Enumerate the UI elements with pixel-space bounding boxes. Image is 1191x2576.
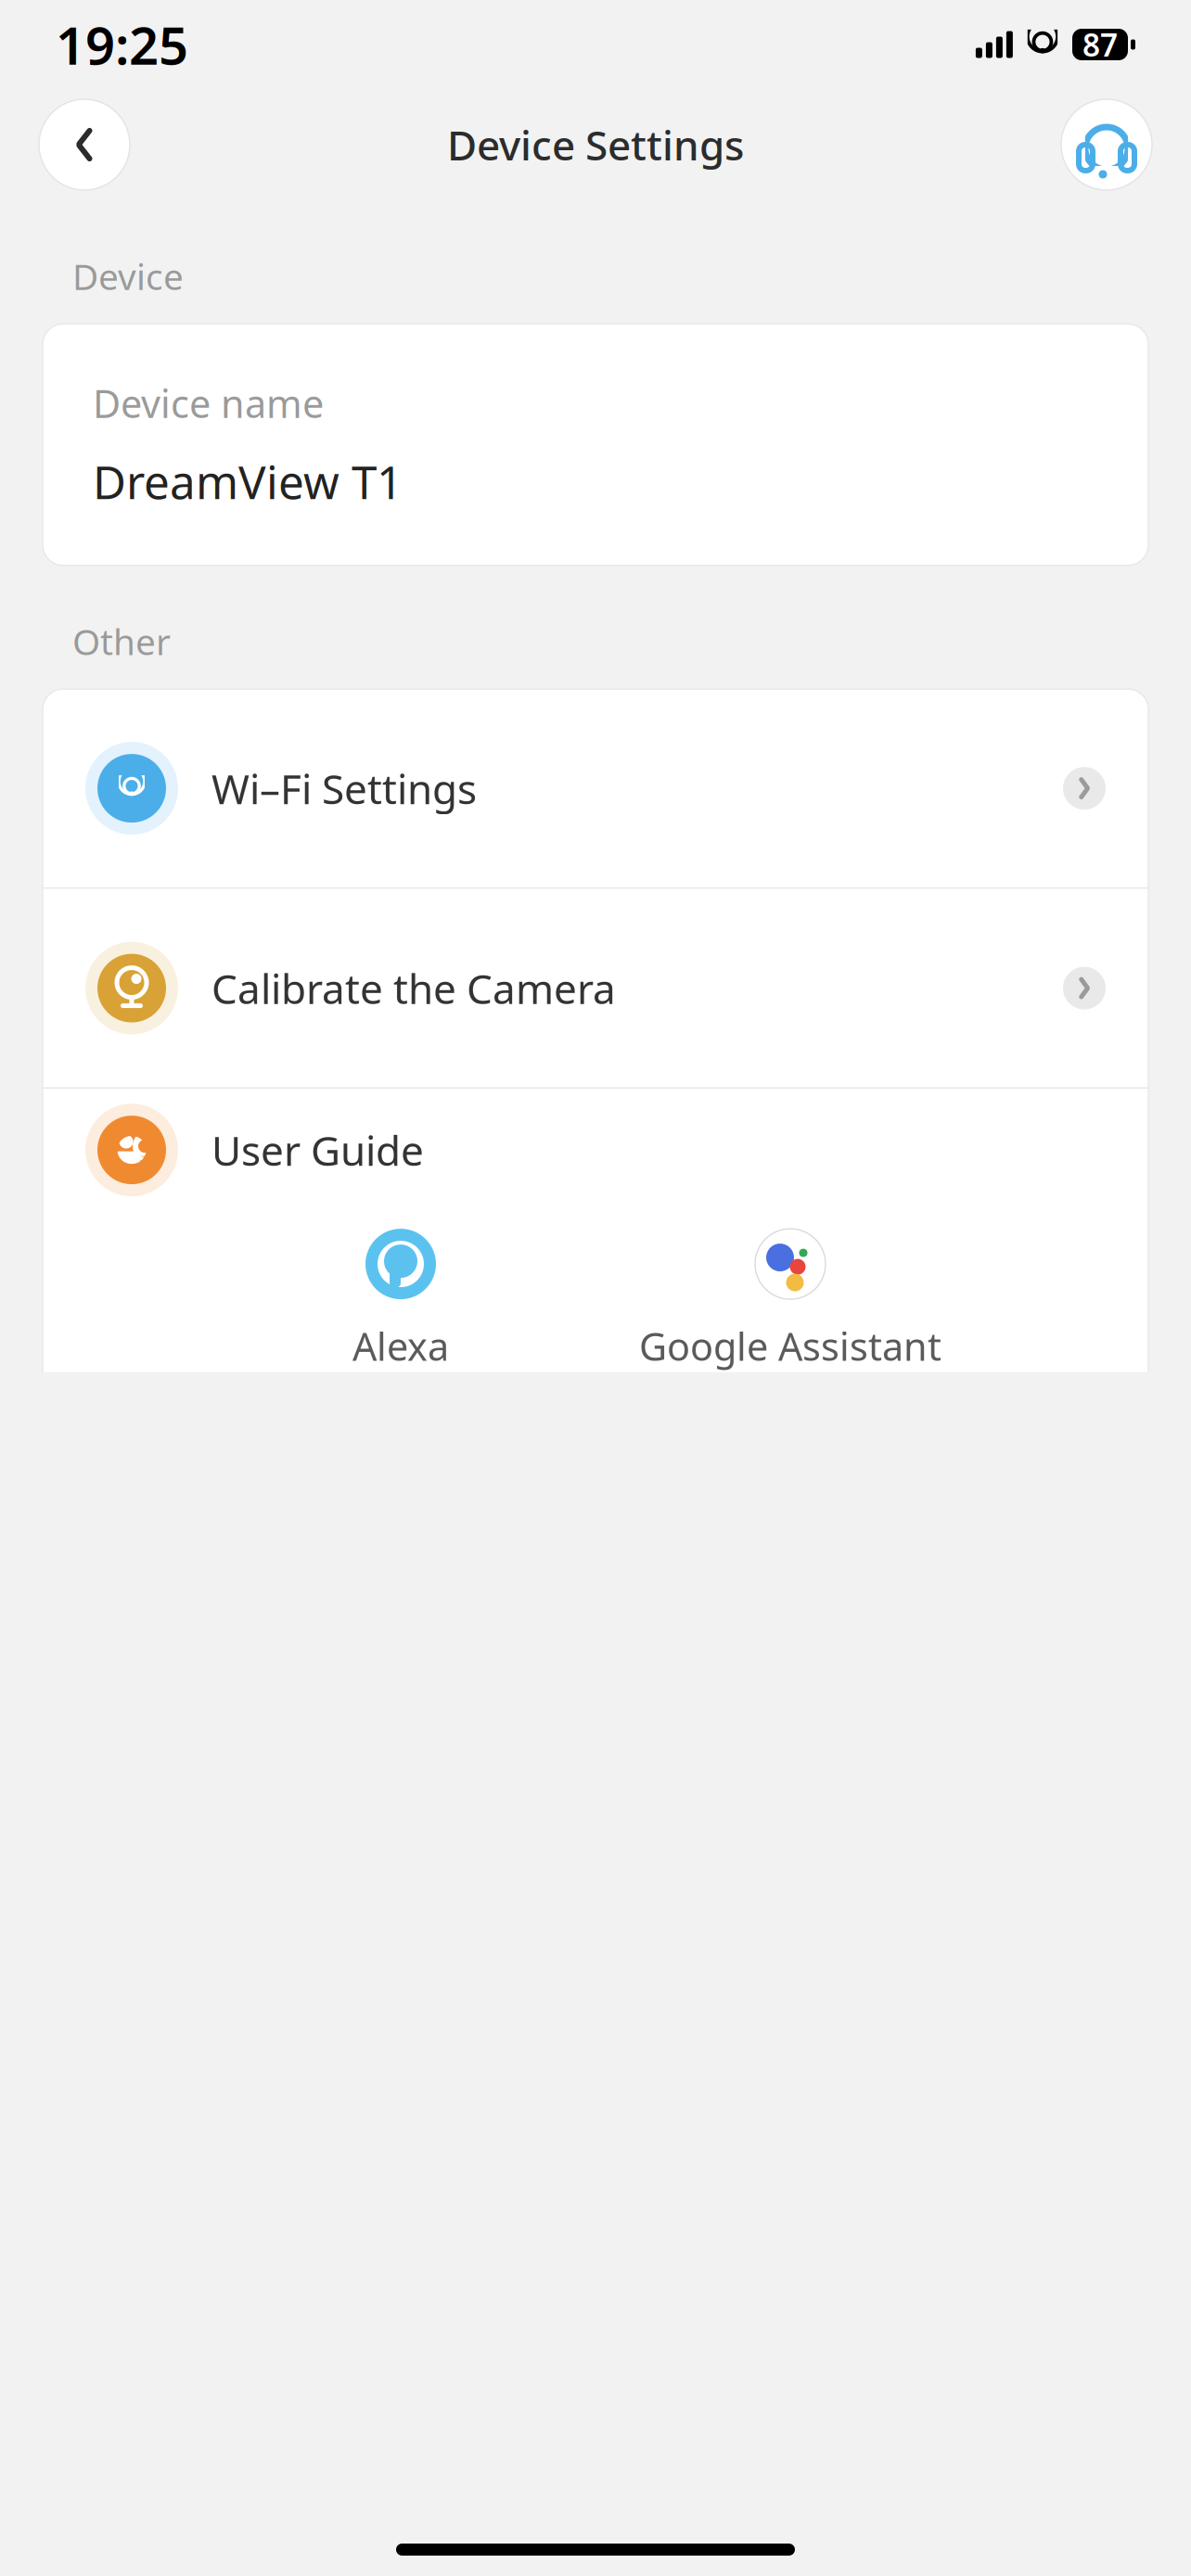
button[interactable]: Support [1061,99,1152,190]
staticText: DreamView T1 [93,451,403,512]
staticText: Alexa [352,1321,449,1371]
button[interactable]: Google Assistant [595,1228,985,1371]
button[interactable]: User Guide [43,1089,1148,1211]
button[interactable]: Alexa [206,1228,595,1371]
staticText: Device Settings [447,118,744,172]
staticText: 87 [1082,24,1118,65]
staticText: Other [72,617,171,665]
button[interactable]: Wi–Fi Settings [43,689,1148,888]
staticText: Calibrate the Camera [211,961,616,1015]
staticText: Device [72,252,184,300]
staticText: Google Assistant [639,1321,941,1371]
button[interactable]: Back [39,99,130,190]
staticText: Wi–Fi Settings [211,761,477,815]
button[interactable]: Calibrate the Camera [43,889,1148,1087]
staticText: User Guide [211,1123,424,1177]
staticText: Device name [93,378,324,429]
staticText: 19:25 [56,10,188,79]
